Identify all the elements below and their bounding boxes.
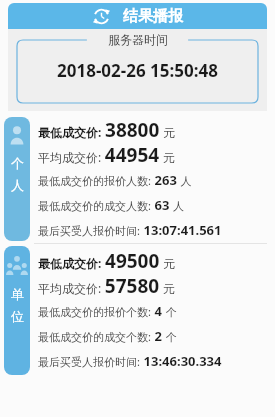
staticText: 平均成交价: 57580 元 (38, 273, 175, 298)
staticText: 最低成交价: 49500 元 (38, 248, 175, 273)
staticText: 人 (11, 177, 24, 193)
staticText: 最低成交价: 38800 元 (38, 117, 175, 142)
staticText: 服务器时间 (108, 32, 168, 47)
staticText: 最低成交价的报价人数: 263 人 (38, 170, 192, 189)
staticText: 最后买受人报价时间: 13:46:30.334 (38, 351, 222, 370)
button[interactable]: 刷新 (8, 3, 267, 29)
staticText: 位 (11, 308, 24, 324)
staticText: 个 (11, 155, 24, 171)
staticText: 平均成交价: 44954 元 (38, 142, 175, 167)
other: 刷新 (92, 7, 111, 26)
staticText: 结果播报 (123, 7, 183, 26)
button[interactable]: 单位结果 (0, 244, 275, 377)
button[interactable]: 个人结果 (0, 115, 275, 243)
staticText: 最低成交价的成交人数: 63 人 (38, 195, 185, 214)
staticText: 最低成交价的报价个数: 4 个 (38, 301, 177, 320)
staticText: 最低成交价的成交个数: 2 个 (38, 326, 177, 345)
staticText: 最后买受人报价时间: 13:07:41.561 (38, 220, 222, 239)
staticText: 单 (11, 286, 24, 302)
staticText: 2018-02-26 15:50:48 (57, 59, 218, 82)
